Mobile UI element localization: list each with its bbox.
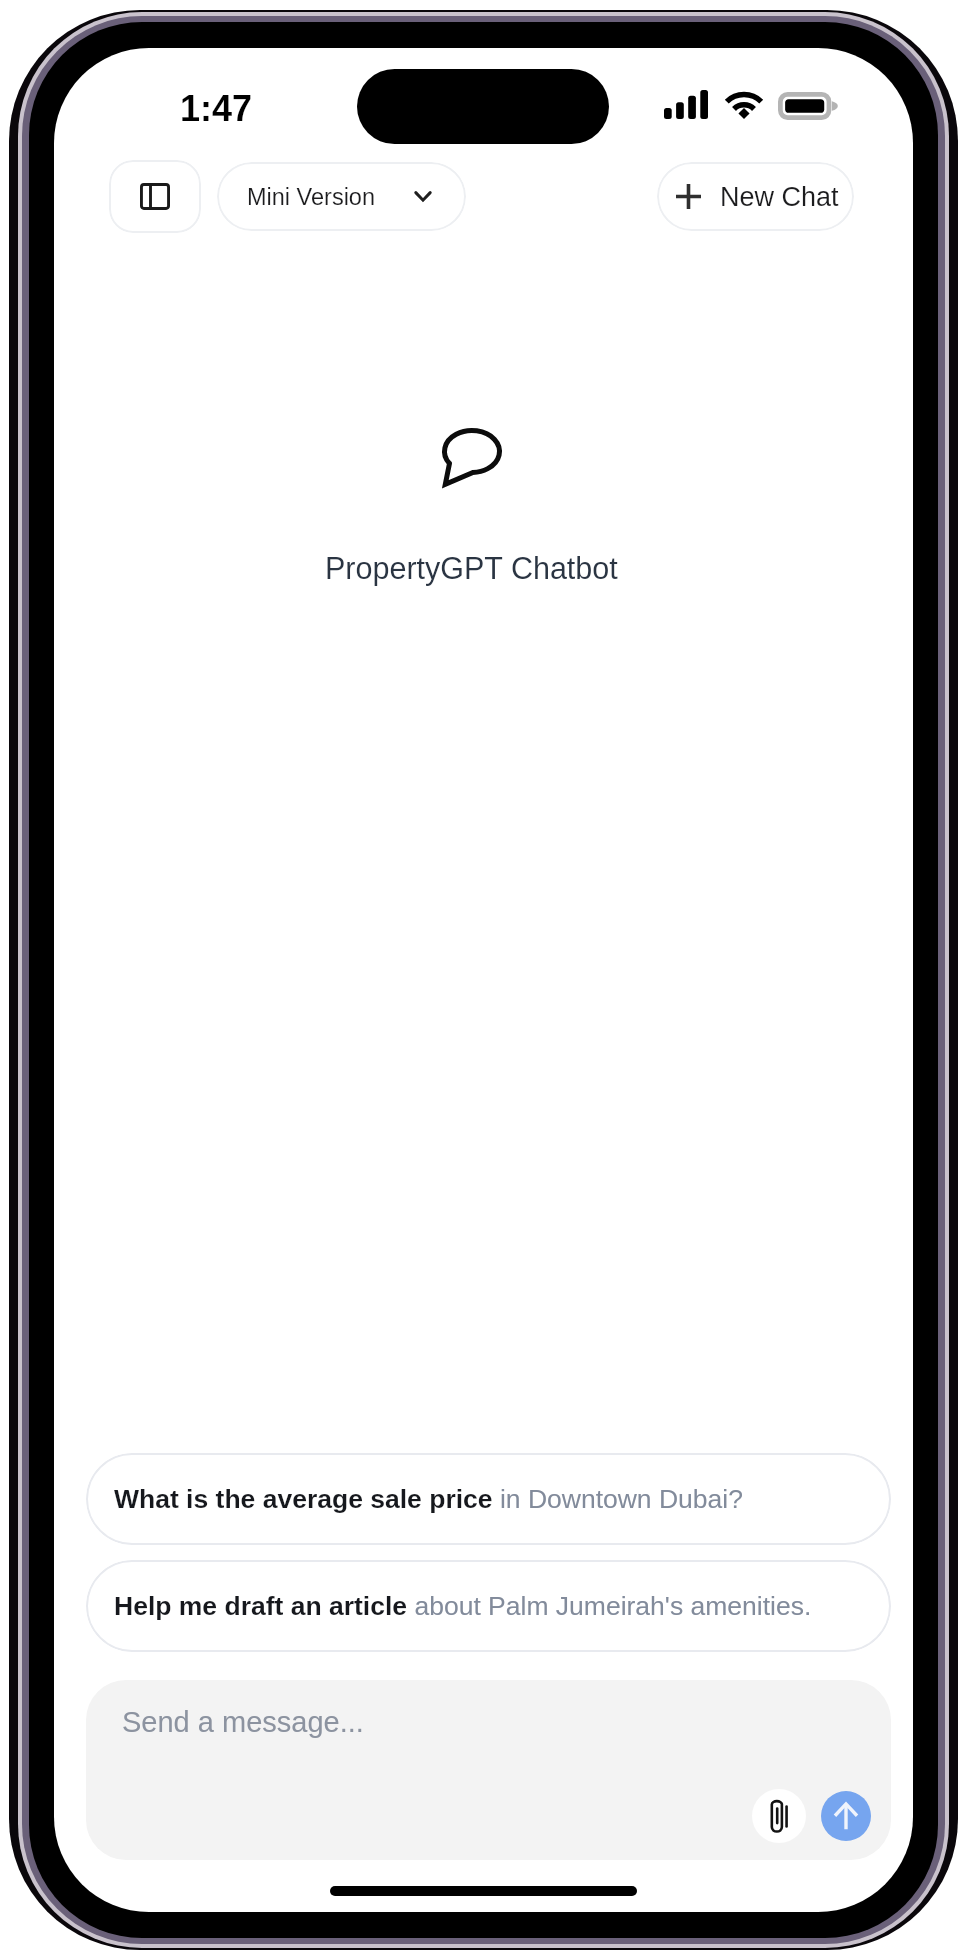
button[interactable]: Send a message... <box>86 1680 891 1860</box>
staticText: PropertyGPT Chatbot <box>325 551 618 585</box>
button[interactable]: Attach file <box>752 1789 806 1843</box>
button[interactable]: Help me draft an article about Palm Jume… <box>86 1560 891 1652</box>
button[interactable]: What is the average sale price in Downto… <box>86 1453 891 1545</box>
button[interactable]: Toggle sidebar <box>109 160 201 233</box>
staticText: What is the average sale price in Downto… <box>114 1484 743 1514</box>
staticText: Help me draft an article about Palm Jume… <box>114 1591 812 1621</box>
staticText: 1:47 <box>180 88 253 128</box>
button[interactable]: New Chat <box>657 162 854 231</box>
button[interactable]: Send <box>821 1791 871 1841</box>
staticText: Send a message... <box>122 1706 364 1738</box>
staticText: New Chat <box>720 182 839 212</box>
button[interactable]: Mini Version <box>217 162 466 231</box>
staticText: Mini Version <box>247 184 375 210</box>
